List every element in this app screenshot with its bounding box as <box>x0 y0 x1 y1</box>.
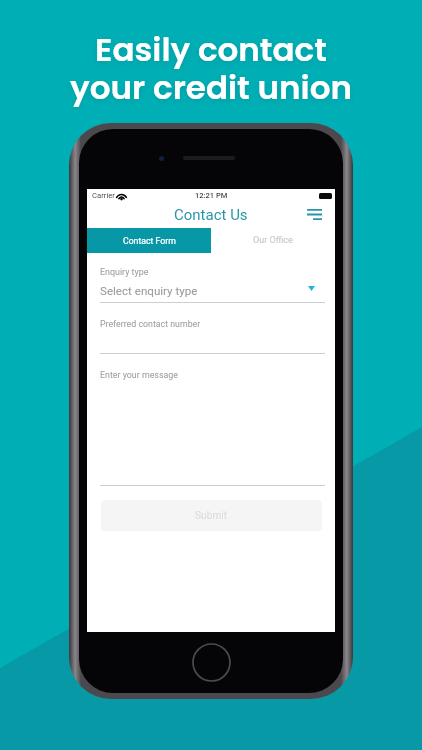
button[interactable]: Contact Form <box>87 228 211 253</box>
button[interactable]: Expand enquiry type <box>304 281 318 295</box>
button[interactable]: Open navigation menu <box>307 209 322 220</box>
staticText: Contact Us <box>174 206 248 224</box>
staticText: Submit <box>195 510 228 522</box>
staticText: 12:21 PM <box>195 191 228 200</box>
staticText: Easily contact your credit union <box>0 27 422 110</box>
staticText: Select enquiry type <box>100 284 198 298</box>
staticText: Enter your message <box>100 370 178 380</box>
staticText: Enquiry type <box>100 267 149 277</box>
staticText: Our Office <box>253 235 293 246</box>
staticText: Preferred contact number <box>100 319 201 329</box>
button[interactable]: Our Office <box>211 228 335 253</box>
staticText: Carrier <box>92 191 115 200</box>
staticText: Contact Form <box>123 236 176 246</box>
